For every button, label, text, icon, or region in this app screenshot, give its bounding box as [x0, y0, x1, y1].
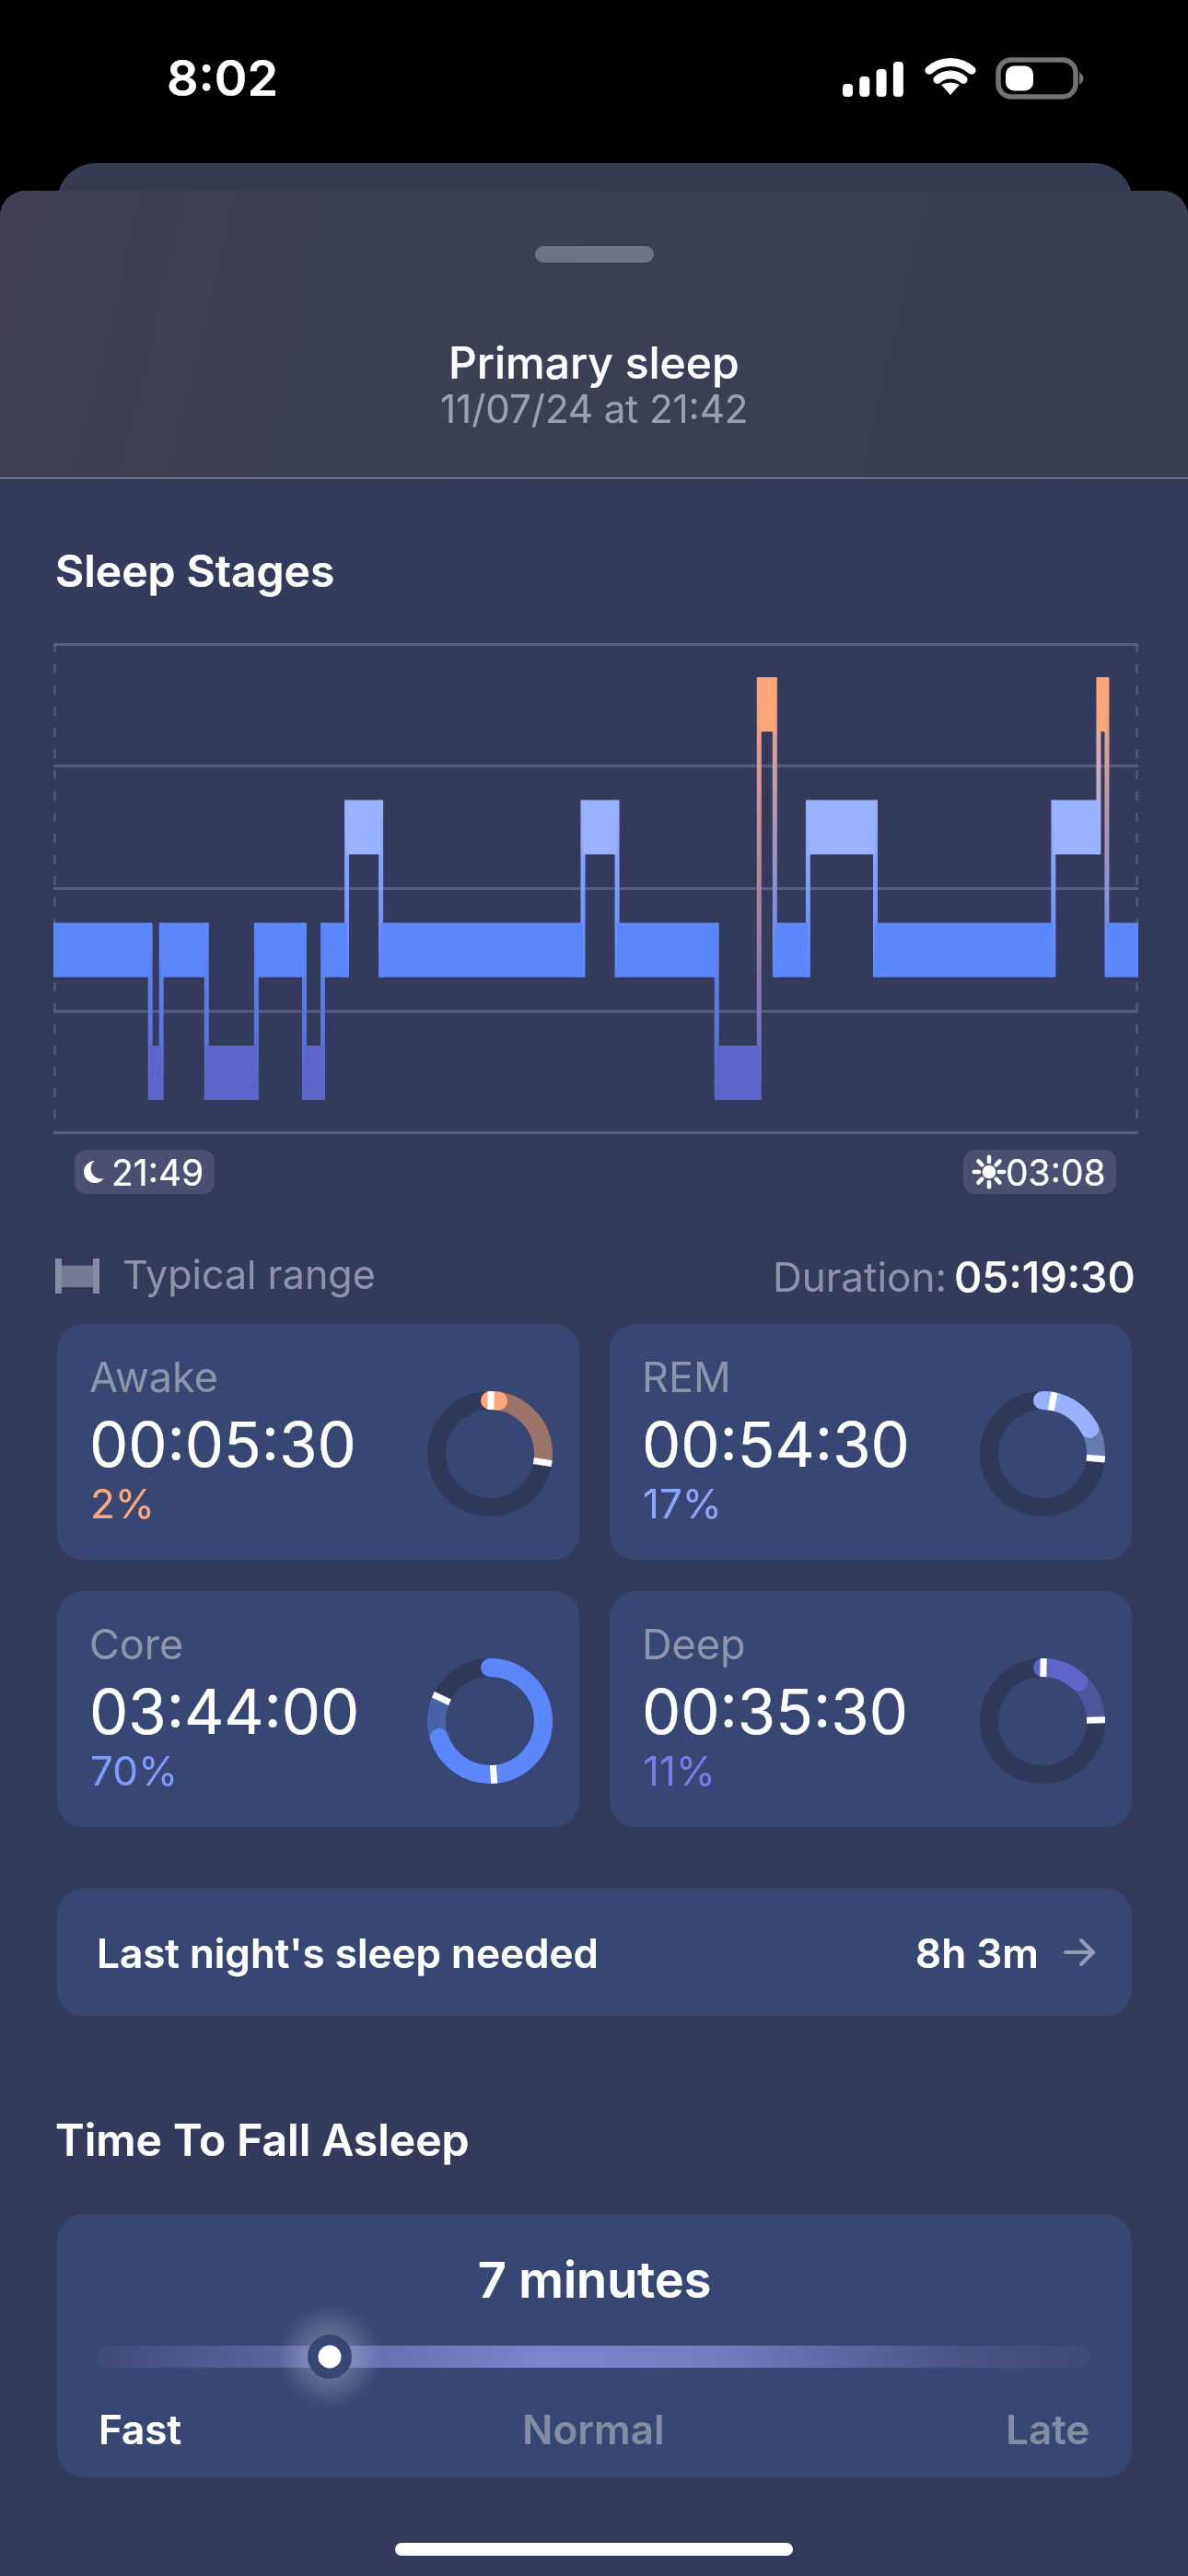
staticText: Sleep Stages	[55, 544, 335, 597]
staticText: Core	[89, 1619, 184, 1669]
staticText: Primary sleep	[448, 335, 740, 389]
staticText: 70%	[90, 1746, 179, 1795]
staticText: Time To Fall Asleep	[55, 2113, 470, 2166]
button[interactable]: Deep	[610, 1591, 1132, 1827]
staticText: 05:19:30	[954, 1250, 1136, 1303]
staticText: 00:54:30	[642, 1407, 910, 1481]
other: Status icons	[843, 60, 1087, 97]
button[interactable]: 21:49	[75, 1150, 215, 1194]
staticText: 03:08	[1006, 1151, 1106, 1194]
staticText: 00:35:30	[642, 1674, 908, 1749]
staticText: 8:02	[167, 48, 279, 108]
staticText: 03:44:00	[89, 1674, 360, 1749]
staticText: 21:49	[111, 1151, 204, 1194]
staticText: 11%	[643, 1746, 716, 1795]
button[interactable]: 7 minutes	[57, 2214, 1132, 2477]
button[interactable]: Awake	[57, 1324, 579, 1560]
staticText: Awake	[89, 1352, 219, 1401]
staticText: Typical range	[122, 1250, 376, 1298]
staticText: 8h 3m	[915, 1928, 1039, 1977]
staticText: Deep	[642, 1619, 746, 1669]
staticText: 2%	[90, 1479, 156, 1528]
staticText: Fast	[99, 2405, 181, 2453]
button[interactable]: 03:08	[963, 1150, 1116, 1194]
staticText: Late	[1006, 2405, 1090, 2453]
staticText: 11/07/24 at 21:42	[440, 385, 749, 432]
staticText: Duration:	[773, 1252, 948, 1301]
staticText: 00:05:30	[89, 1407, 356, 1481]
staticText: REM	[642, 1352, 731, 1401]
staticText: Normal	[522, 2405, 665, 2453]
button[interactable]: REM	[610, 1324, 1132, 1560]
staticText: 7 minutes	[57, 2250, 1132, 2310]
staticText: 17%	[643, 1479, 723, 1528]
staticText: Last night's sleep needed	[97, 1928, 599, 1977]
button[interactable]: Core	[57, 1591, 579, 1827]
button[interactable]: Last night's sleep needed	[57, 1889, 1132, 2016]
